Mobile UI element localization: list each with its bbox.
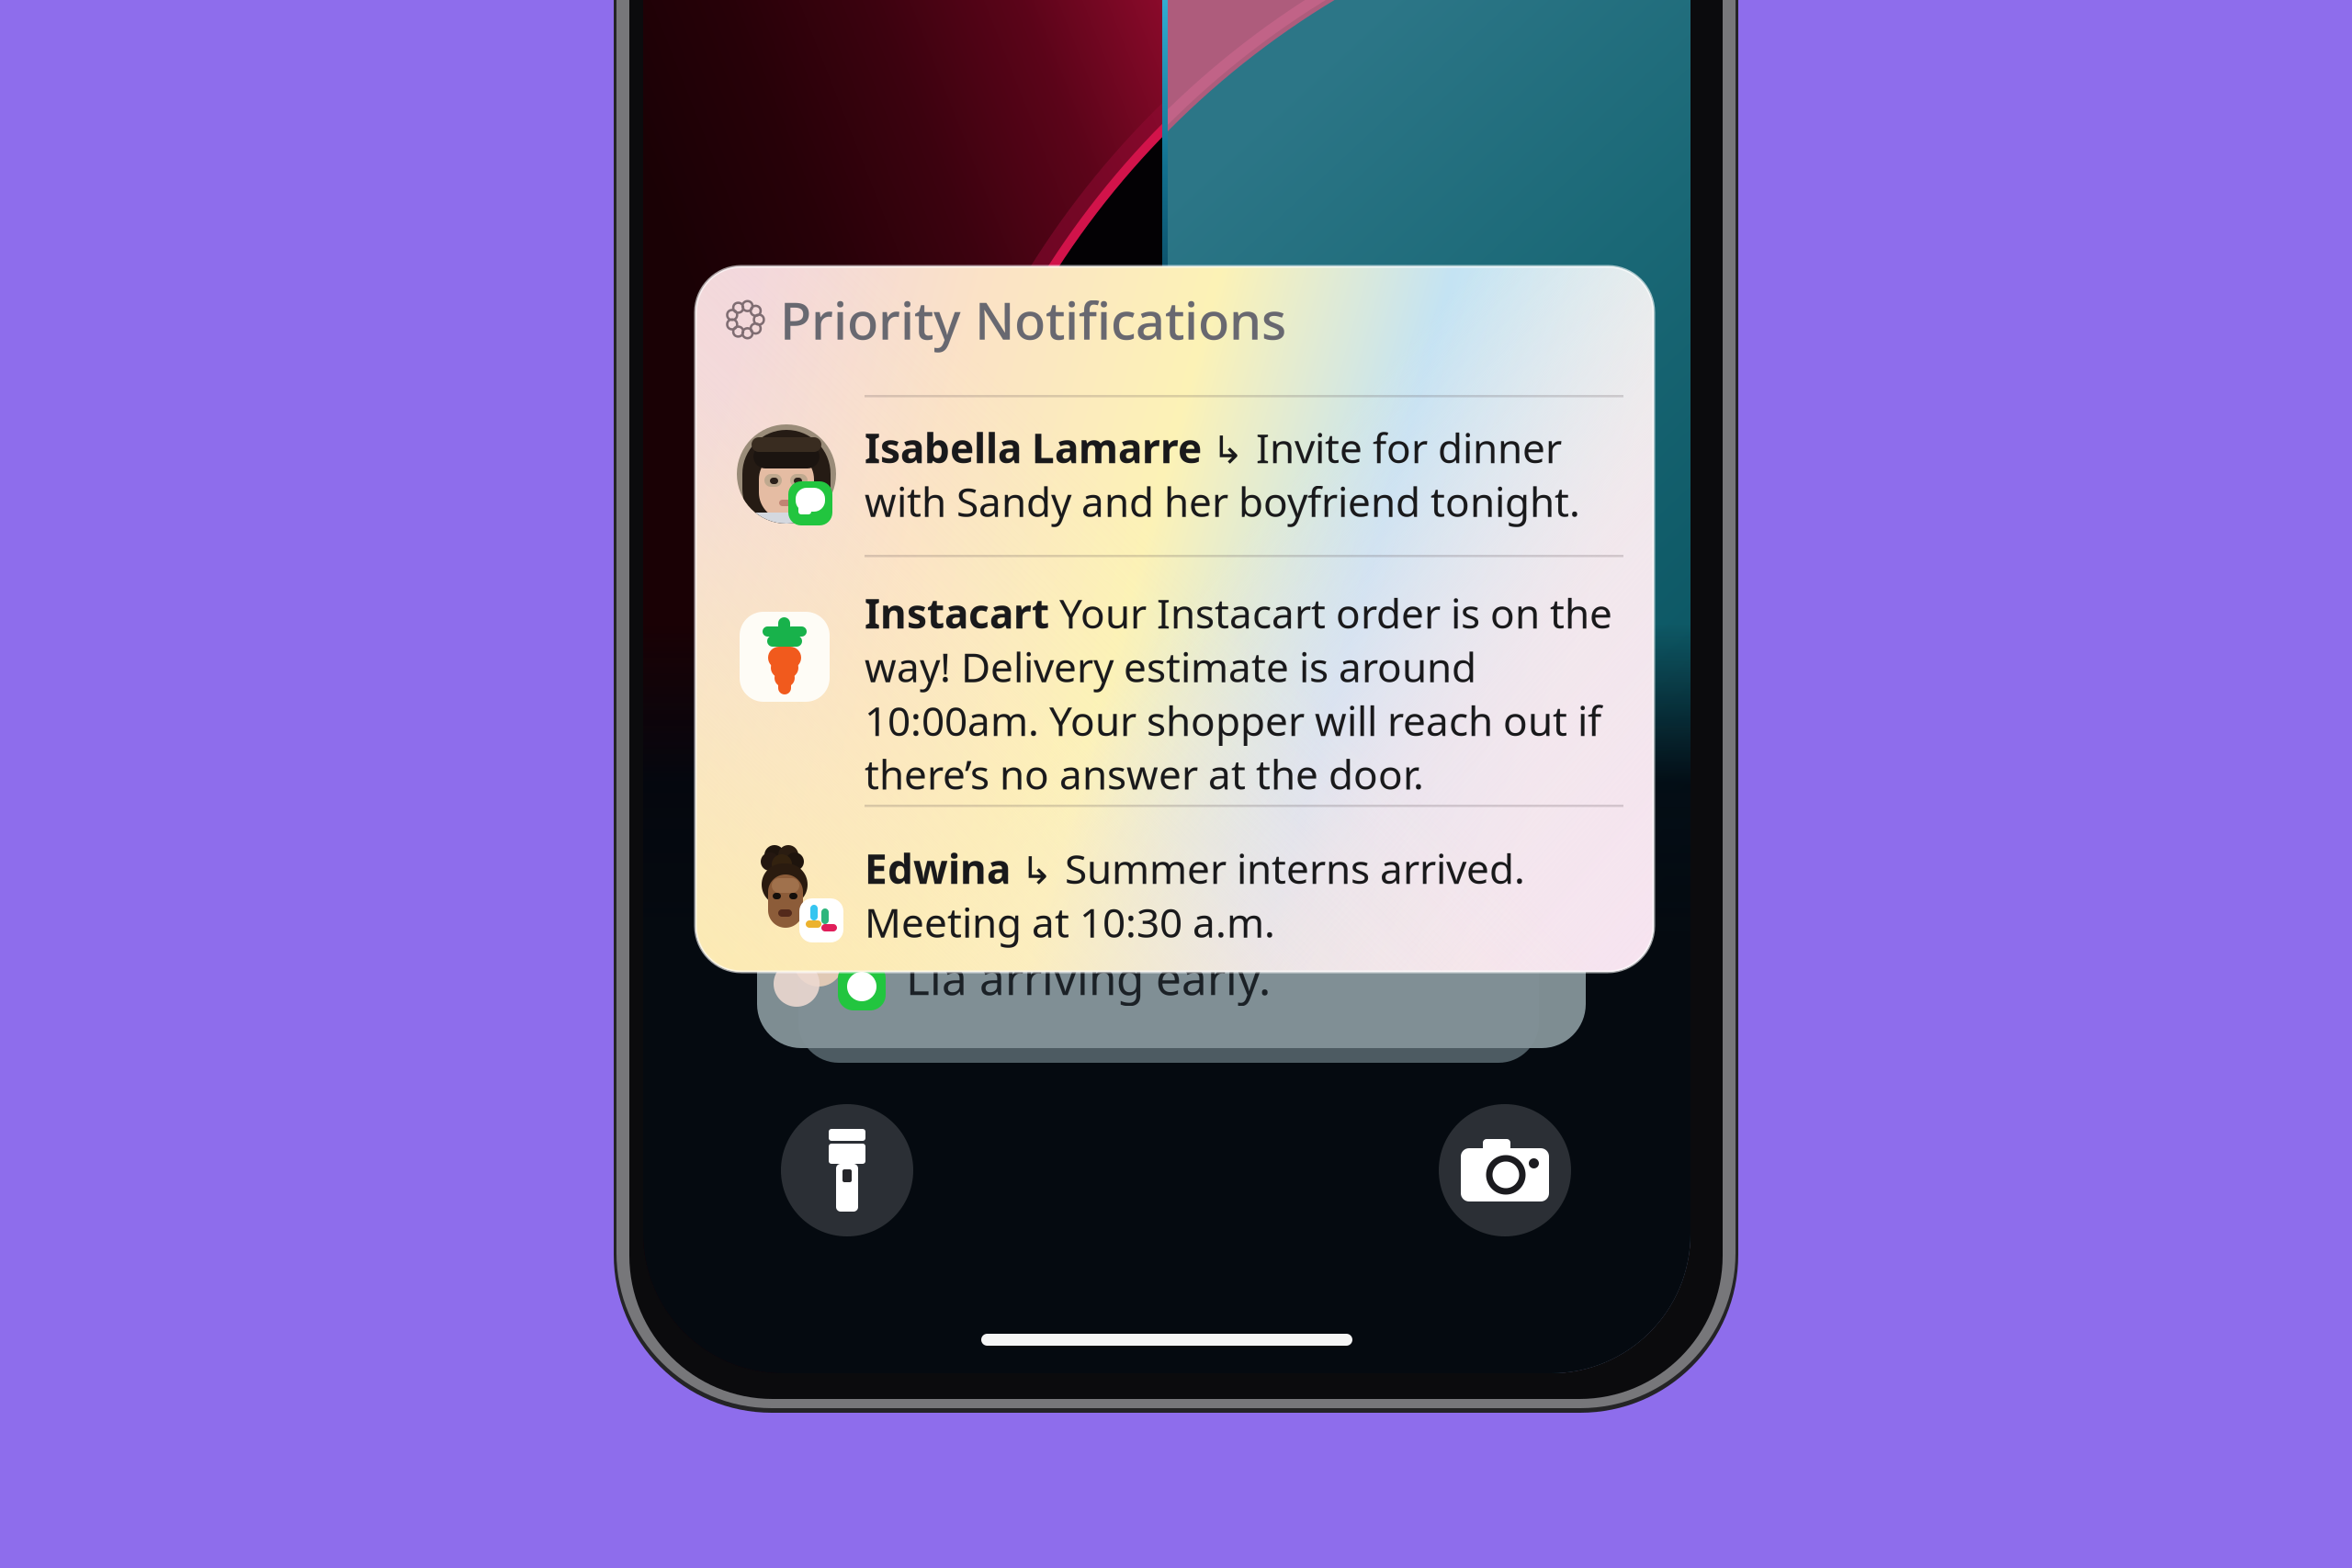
button[interactable]: Instacart Your Instacart order is on the…: [865, 586, 1636, 807]
staticText: Isabella Lamarre ↳ Invite for dinner wit…: [865, 421, 1580, 528]
staticText: Priority Notifications: [780, 285, 1286, 354]
button[interactable]: Isabella Lamarre ↳ Invite for dinner wit…: [865, 421, 1636, 531]
staticText: Instacart Your Instacart order is on the…: [865, 586, 1612, 801]
button[interactable]: Priority Notifications: [695, 266, 1654, 972]
button[interactable]: Lia arriving early.: [757, 924, 1586, 1048]
button[interactable]: Camera: [1439, 1104, 1571, 1236]
staticText: Lia arriving early.: [906, 947, 1271, 1007]
button[interactable]: Flashlight: [781, 1104, 913, 1236]
button[interactable]: Edwina ↳ Summer interns arrived. Meeting…: [865, 841, 1636, 952]
staticText: Edwina ↳ Summer interns arrived. Meeting…: [865, 841, 1525, 949]
